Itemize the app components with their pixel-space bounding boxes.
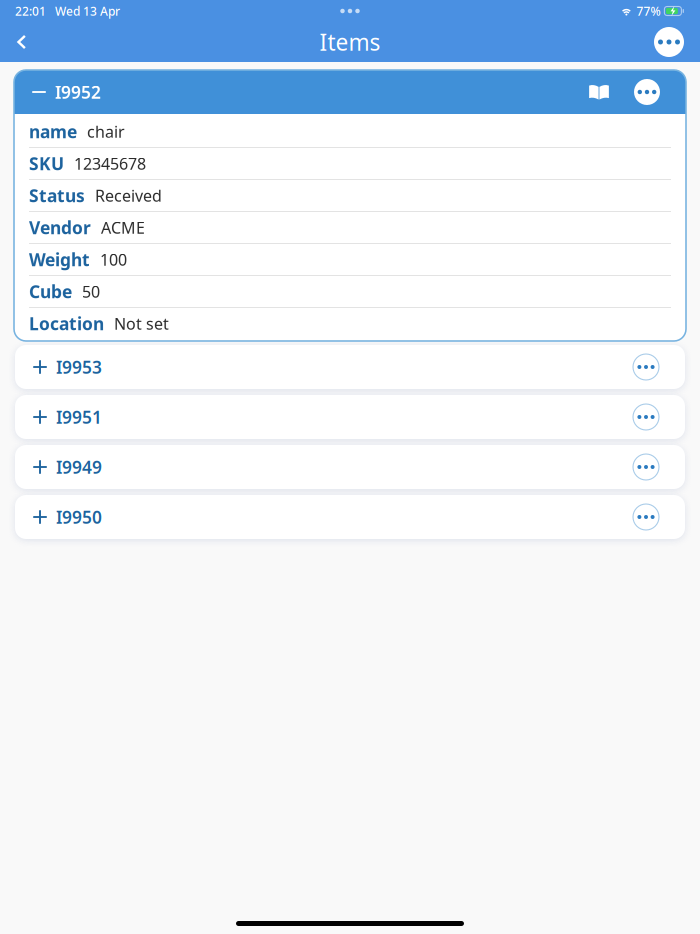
staticText: chair [87, 121, 125, 142]
staticText: 22:01 [15, 3, 46, 19]
staticText: Wed 13 Apr [46, 3, 120, 19]
staticText: Weight [29, 248, 90, 271]
button[interactable]: More options for I9953 [620, 345, 672, 389]
staticText: 50 [82, 281, 100, 302]
staticText: Received [95, 185, 162, 206]
button[interactable]: Documentation [577, 70, 621, 114]
staticText: 12345678 [74, 153, 146, 174]
staticText: Status [29, 184, 85, 207]
staticText: name [29, 120, 77, 143]
button[interactable]: I9952 [14, 70, 577, 114]
staticText: Not set [114, 313, 169, 334]
button[interactable]: I9950 [15, 495, 620, 539]
staticText: Cube [29, 280, 72, 303]
staticText: I9949 [56, 455, 102, 478]
staticText: ACME [101, 217, 145, 238]
staticText: I9950 [56, 505, 102, 528]
staticText: Vendor [29, 216, 91, 239]
staticText: 100 [100, 249, 127, 270]
button[interactable]: More options [649, 22, 689, 62]
staticText: I9953 [56, 355, 102, 378]
button[interactable]: More options for I9951 [620, 395, 672, 439]
staticText: I9952 [55, 80, 101, 103]
button[interactable]: Back [2, 22, 42, 62]
button[interactable]: I9949 [15, 445, 620, 489]
staticText: SKU [29, 152, 64, 175]
button[interactable]: I9951 [15, 395, 620, 439]
button[interactable]: I9953 [15, 345, 620, 389]
button[interactable]: More options for I9950 [620, 495, 672, 539]
staticText: Location [29, 312, 104, 335]
staticText: 77% [636, 3, 660, 19]
staticText: Items [319, 27, 380, 57]
button[interactable]: More options for I9952 [621, 70, 673, 114]
button[interactable]: More options for I9949 [620, 445, 672, 489]
staticText: I9951 [56, 405, 102, 428]
